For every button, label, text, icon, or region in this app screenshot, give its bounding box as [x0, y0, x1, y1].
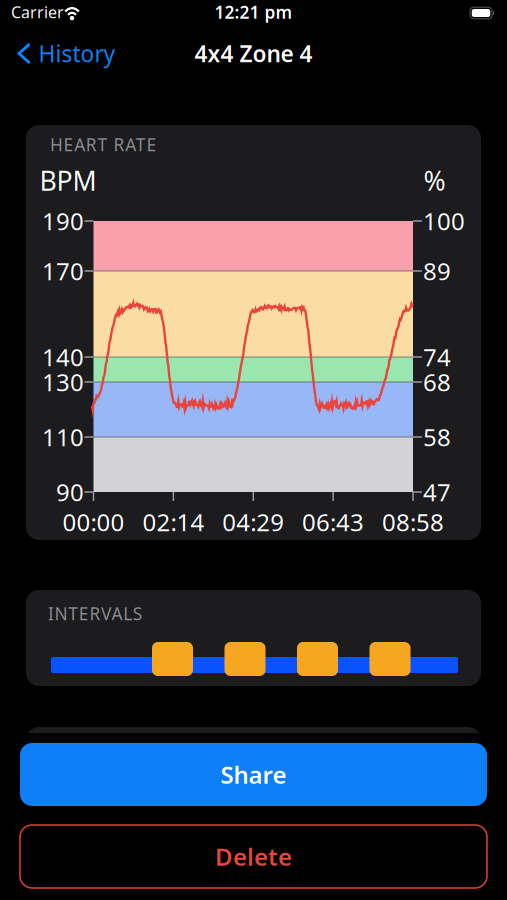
staticText: 04:29 [222, 506, 284, 538]
staticText: 90 [56, 476, 84, 508]
staticText: 110 [42, 421, 84, 453]
staticText: 89 [423, 255, 451, 287]
staticText: 190 [42, 205, 84, 237]
staticText: 08:58 [382, 506, 444, 538]
staticText: 47 [423, 476, 451, 508]
staticText: BPM [39, 163, 96, 198]
staticText: 140 [42, 341, 84, 373]
staticText: 06:43 [302, 506, 364, 538]
staticText: 58 [423, 421, 451, 453]
staticText: Delete [215, 841, 292, 872]
staticText: 02:14 [142, 506, 204, 538]
staticText: 170 [42, 255, 84, 287]
staticText: HEART RATE [50, 133, 156, 156]
button[interactable]: History [16, 38, 115, 68]
staticText: 4x4 Zone 4 [194, 38, 312, 68]
staticText: % [423, 163, 445, 198]
staticText: 12:21 pm [214, 0, 292, 23]
staticText: 100 [423, 205, 465, 237]
button[interactable]: Delete [20, 825, 487, 888]
button[interactable]: Share [20, 743, 487, 806]
staticText: 00:00 [62, 506, 124, 538]
staticText: 68 [423, 366, 451, 398]
staticText: History [38, 38, 115, 68]
staticText: Share [220, 759, 286, 790]
staticText: INTERVALS [48, 602, 143, 625]
staticText: Carrier [11, 1, 64, 23]
staticText: 130 [42, 366, 84, 398]
staticText: 74 [423, 341, 451, 373]
